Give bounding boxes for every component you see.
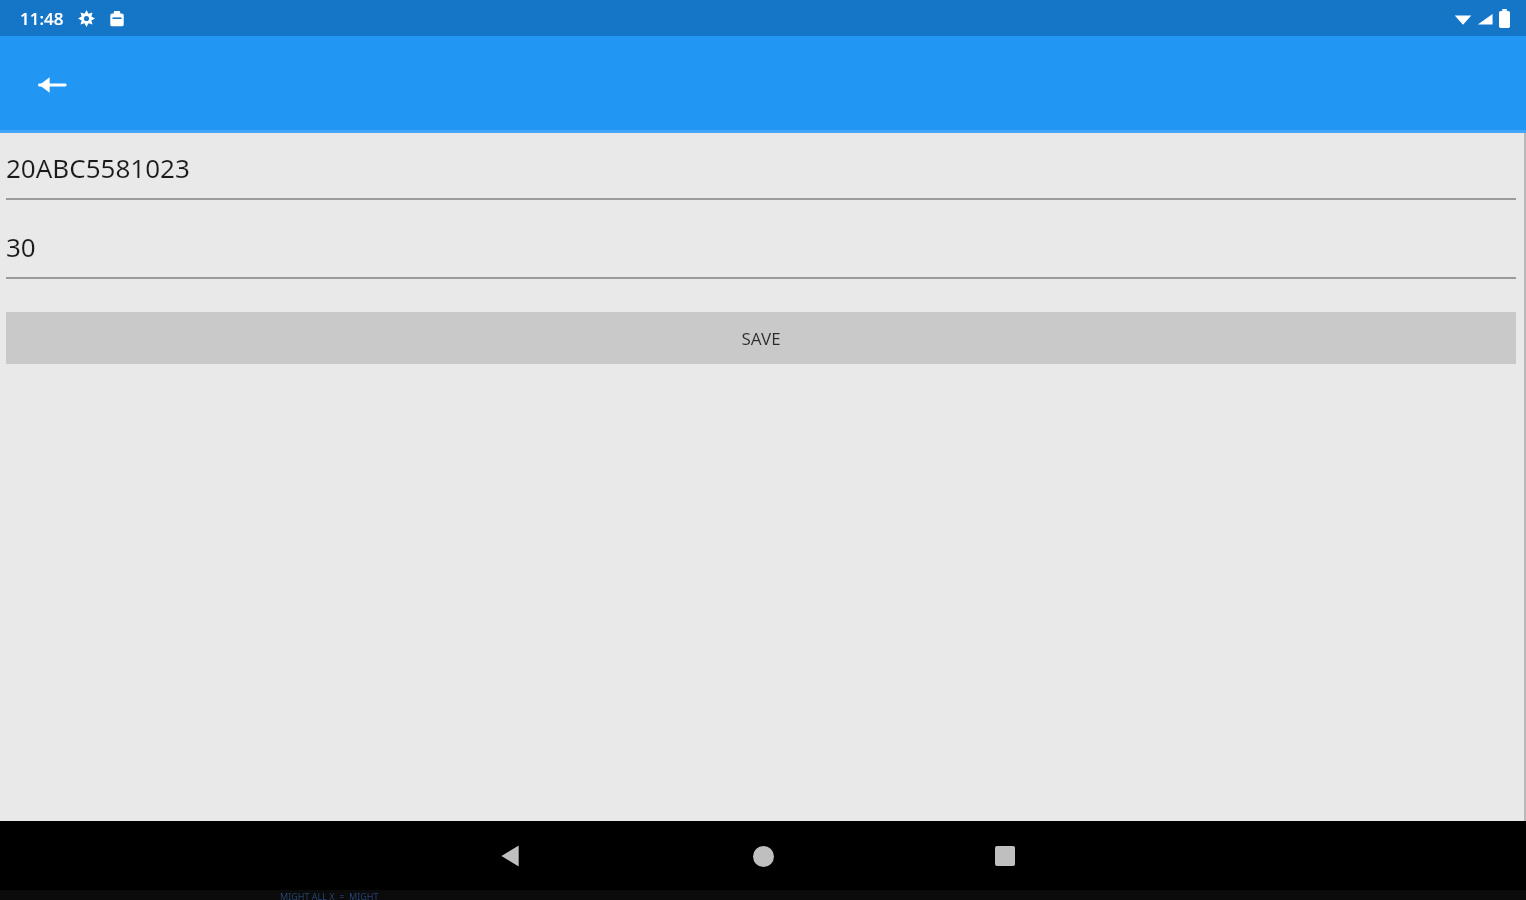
staticText: MIGHT ALL X = MIGHT xyxy=(280,890,379,900)
button[interactable]: Back xyxy=(480,825,542,887)
button[interactable]: Home xyxy=(732,825,794,887)
button[interactable]: Navigate up xyxy=(18,51,86,119)
staticText: SAVE xyxy=(741,327,781,350)
button[interactable]: SAVE xyxy=(6,312,1516,364)
button[interactable]: 30 xyxy=(6,226,1516,279)
staticText: 20ABC5581023 xyxy=(6,150,190,185)
button[interactable]: Recent apps xyxy=(974,825,1036,887)
staticText: 30 xyxy=(6,229,36,264)
staticText: 11:48 xyxy=(20,7,64,30)
button[interactable]: 20ABC5581023 xyxy=(6,133,1516,200)
